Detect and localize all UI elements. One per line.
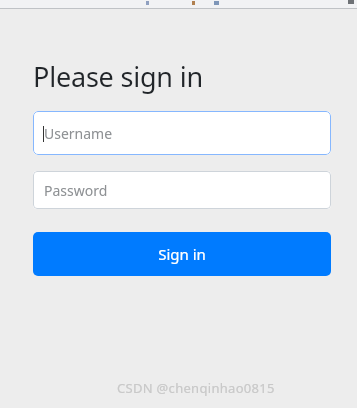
- staticText: Sign in: [158, 244, 206, 264]
- staticText: CSDN @chenqinhao0815: [117, 379, 275, 397]
- staticText: Password: [44, 181, 108, 200]
- staticText: Username: [44, 124, 113, 143]
- button[interactable]: Username: [33, 111, 331, 155]
- staticText: Please sign in: [33, 58, 203, 95]
- button[interactable]: Sign in: [33, 232, 331, 276]
- button[interactable]: Password: [33, 171, 331, 209]
